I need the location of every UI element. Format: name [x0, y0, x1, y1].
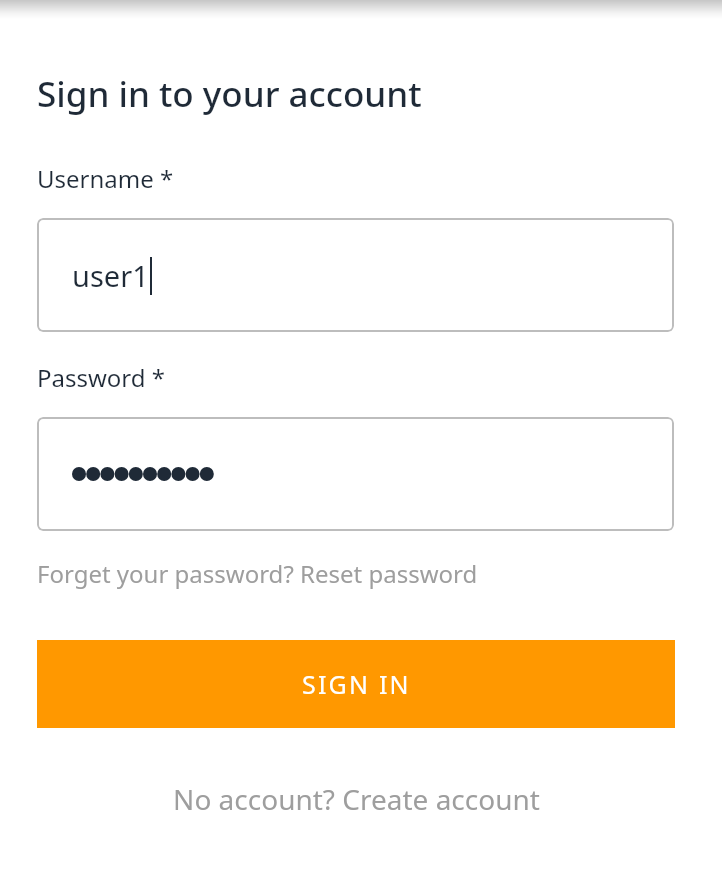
staticText: Password *: [37, 361, 166, 394]
button[interactable]: SIGN IN: [37, 640, 675, 728]
staticText: Sign in to your account: [37, 70, 422, 118]
staticText: No account? Create account: [173, 780, 540, 818]
staticText: SIGN IN: [302, 667, 411, 701]
staticText: user1: [72, 256, 149, 295]
staticText: Forget your password? Reset password: [37, 557, 478, 590]
other: Toolbar shadow: [0, 0, 722, 19]
button[interactable]: No account? Create account: [37, 780, 675, 818]
staticText: Username *: [37, 162, 174, 195]
button[interactable]: user1: [37, 218, 674, 332]
button[interactable]: Forget your password? Reset password: [37, 557, 478, 590]
button[interactable]: [37, 417, 674, 531]
